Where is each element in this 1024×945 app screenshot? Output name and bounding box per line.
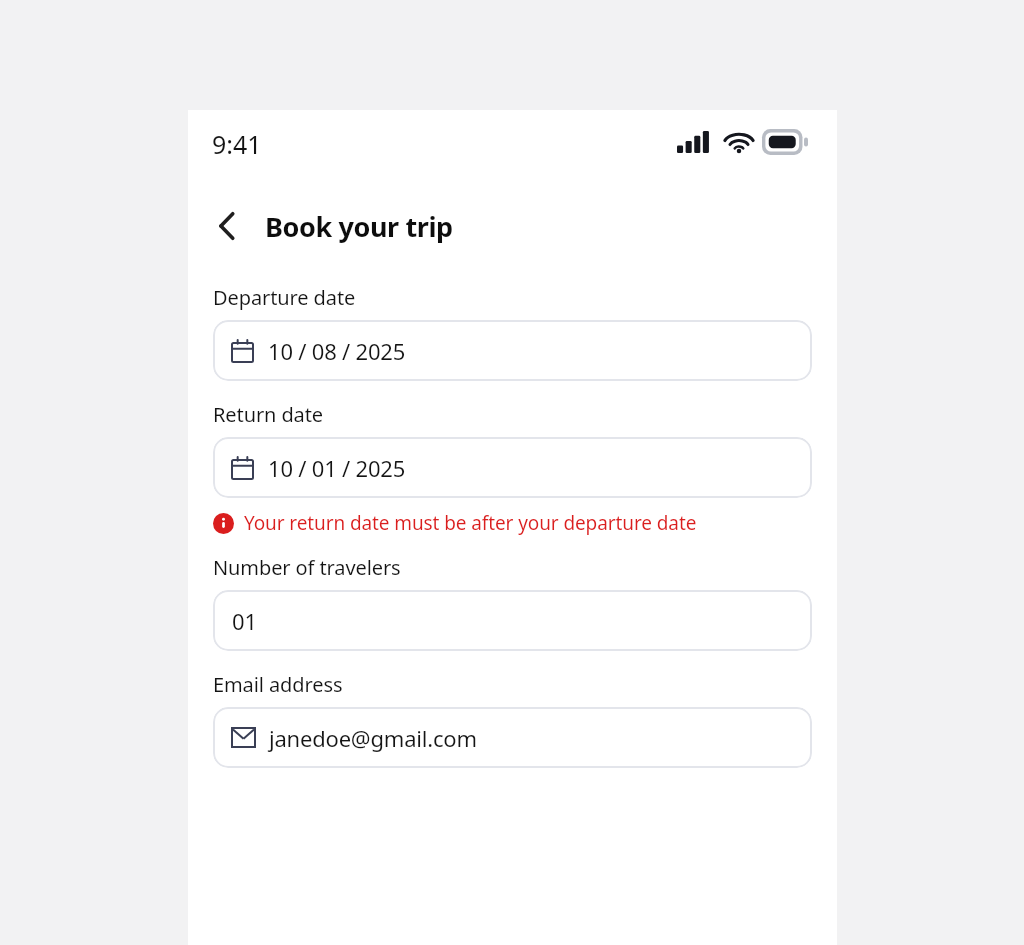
staticText: Number of travelers	[213, 554, 401, 581]
staticText: Return date	[213, 401, 324, 428]
button[interactable]: janedoe@gmail.com	[213, 707, 812, 768]
staticText: Email address	[213, 671, 343, 698]
staticText: Your return date must be after your depa…	[244, 510, 697, 536]
staticText: Book your trip	[265, 208, 453, 245]
staticText: 9:41	[212, 127, 262, 161]
button[interactable]: 10 / 08 / 2025	[213, 320, 812, 381]
staticText: 10 / 08 / 2025	[268, 336, 406, 366]
staticText: 01	[232, 606, 257, 636]
staticText: 10 / 01 / 2025	[268, 453, 406, 483]
button[interactable]: Back	[202, 201, 252, 251]
button[interactable]: 10 / 01 / 2025	[213, 437, 812, 498]
staticText: janedoe@gmail.com	[269, 723, 477, 753]
staticText: Departure date	[213, 284, 356, 311]
button[interactable]: 01	[213, 590, 812, 651]
